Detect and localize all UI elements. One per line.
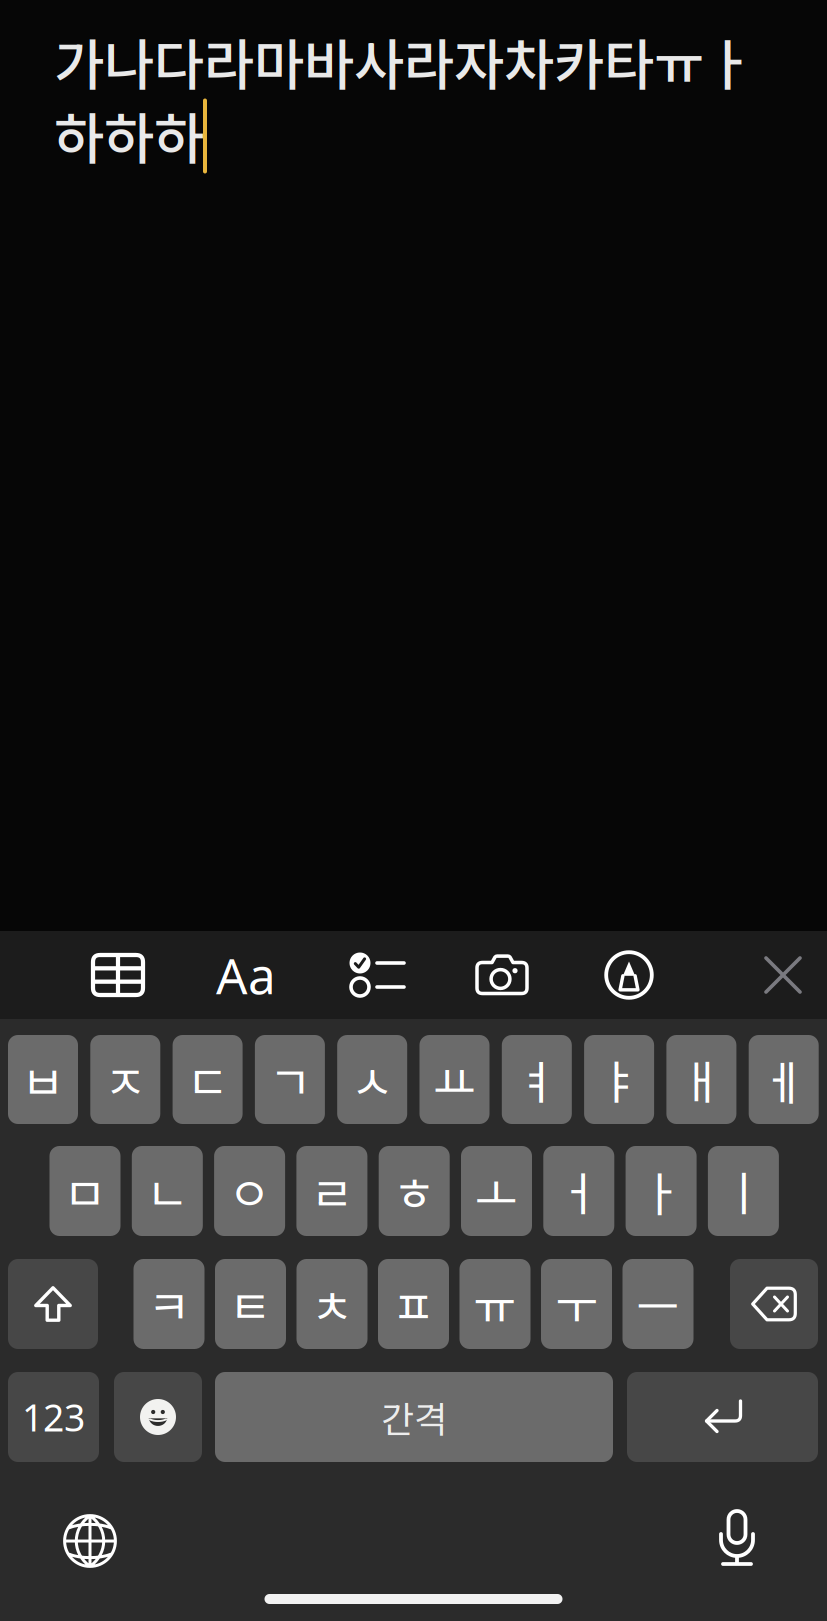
staticText: ㅅ bbox=[351, 1046, 394, 1113]
button[interactable]: ㅏ bbox=[626, 1146, 697, 1236]
button[interactable]: Numbers bbox=[8, 1372, 99, 1462]
staticText: ㅌ bbox=[229, 1270, 272, 1338]
button[interactable]: ㅕ bbox=[502, 1035, 572, 1124]
button[interactable]: ㅐ bbox=[666, 1035, 736, 1124]
button[interactable]: ㅔ bbox=[749, 1035, 819, 1124]
button[interactable]: Space bbox=[215, 1372, 613, 1462]
button[interactable]: ㅋ bbox=[133, 1259, 204, 1349]
staticText: ㅍ bbox=[392, 1270, 435, 1338]
staticText: ㅊ bbox=[310, 1270, 353, 1338]
button[interactable]: ㅗ bbox=[461, 1146, 532, 1236]
button[interactable]: Shift bbox=[8, 1259, 98, 1349]
staticText: ㅠ bbox=[473, 1270, 516, 1338]
staticText: ㅏ bbox=[640, 1157, 683, 1225]
button[interactable]: Checklist bbox=[329, 931, 425, 1019]
button[interactable]: Markup bbox=[581, 931, 677, 1019]
button[interactable]: ㅛ bbox=[419, 1035, 489, 1124]
staticText: ㅂ bbox=[21, 1046, 64, 1113]
staticText: ㅛ bbox=[433, 1046, 476, 1113]
staticText: ㅁ bbox=[63, 1157, 106, 1225]
button[interactable]: Emoji bbox=[114, 1372, 202, 1462]
staticText: ㄹ bbox=[310, 1157, 353, 1225]
staticText: ㅈ bbox=[104, 1046, 147, 1113]
button[interactable]: ㅓ bbox=[543, 1146, 614, 1236]
button[interactable]: ㅇ bbox=[214, 1146, 285, 1236]
button[interactable]: ㄹ bbox=[296, 1146, 367, 1236]
staticText: ㄴ bbox=[146, 1157, 189, 1225]
button[interactable]: Return bbox=[627, 1372, 818, 1462]
staticText: ㅡ bbox=[636, 1270, 679, 1338]
staticText: ㅋ bbox=[147, 1270, 190, 1338]
button[interactable]: ㅑ bbox=[584, 1035, 654, 1124]
button[interactable]: ㄷ bbox=[173, 1035, 243, 1124]
staticText: ㅐ bbox=[680, 1046, 723, 1113]
staticText: 하하하 bbox=[54, 95, 204, 175]
button[interactable]: ㅌ bbox=[215, 1259, 286, 1349]
button[interactable]: ㅎ bbox=[379, 1146, 450, 1236]
button[interactable]: ㅂ bbox=[8, 1035, 78, 1124]
staticText: ㄱ bbox=[268, 1046, 311, 1113]
button[interactable]: ㅍ bbox=[378, 1259, 449, 1349]
button[interactable]: Close keyboard bbox=[735, 931, 827, 1019]
button[interactable]: Next keyboard bbox=[47, 1498, 133, 1584]
staticText: 가나다라마바사라자차카타ㅠㅏ bbox=[54, 21, 754, 101]
button[interactable]: Dictation bbox=[694, 1496, 780, 1582]
button[interactable]: ㄴ bbox=[132, 1146, 203, 1236]
button[interactable]: ㅊ bbox=[296, 1259, 367, 1349]
button[interactable]: ㅁ bbox=[49, 1146, 120, 1236]
staticText: ㅎ bbox=[393, 1157, 436, 1225]
button[interactable]: Table bbox=[70, 931, 166, 1019]
staticText: ㅓ bbox=[557, 1157, 600, 1225]
staticText: Aa bbox=[216, 942, 276, 1008]
button[interactable]: ㅡ bbox=[622, 1259, 693, 1349]
button[interactable]: ㅠ bbox=[459, 1259, 530, 1349]
staticText: ㅑ bbox=[598, 1046, 641, 1113]
button[interactable]: ㅈ bbox=[90, 1035, 160, 1124]
button[interactable]: ㅣ bbox=[708, 1146, 779, 1236]
staticText: ㅗ bbox=[475, 1157, 518, 1225]
staticText: 123 bbox=[22, 1392, 85, 1442]
button[interactable]: Text format bbox=[198, 931, 294, 1019]
staticText: ㅔ bbox=[762, 1046, 805, 1113]
button[interactable]: Camera bbox=[454, 931, 550, 1019]
button[interactable]: ㄱ bbox=[255, 1035, 325, 1124]
staticText: ㅜ bbox=[555, 1270, 598, 1338]
staticText: ㅇ bbox=[228, 1157, 271, 1225]
button[interactable]: Delete bbox=[730, 1259, 818, 1349]
staticText: ㄷ bbox=[186, 1046, 229, 1113]
staticText: ㅣ bbox=[722, 1157, 765, 1225]
staticText: 간격 bbox=[381, 1391, 447, 1443]
button[interactable]: ㅜ bbox=[541, 1259, 612, 1349]
button[interactable]: ㅅ bbox=[337, 1035, 407, 1124]
staticText: ㅕ bbox=[515, 1046, 558, 1113]
